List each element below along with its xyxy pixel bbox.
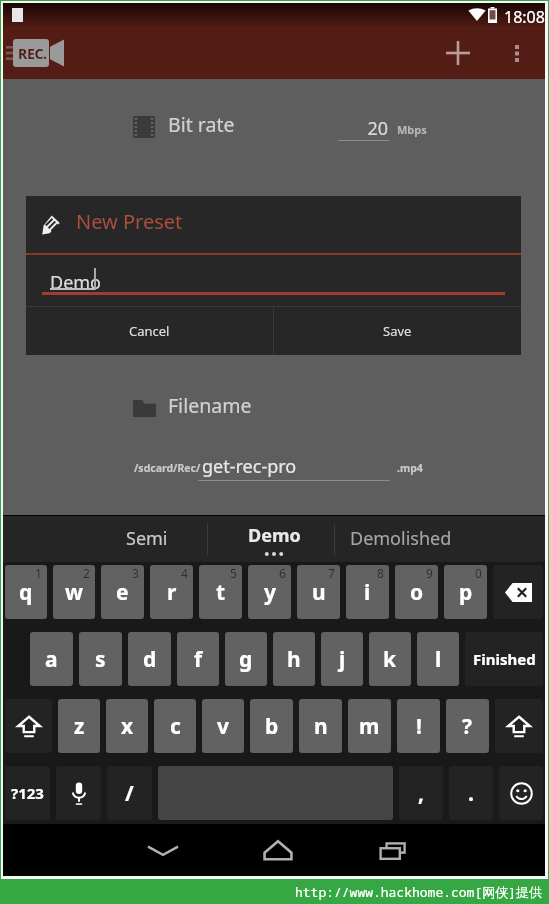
staticText: o (410, 578, 424, 607)
button[interactable]: w (53, 565, 95, 619)
staticText: http://www.hackhome.com[网侠]提供 (295, 883, 543, 901)
staticText: w (65, 578, 83, 607)
staticText: .mp4 (397, 461, 423, 475)
staticText: Demolished (350, 526, 452, 551)
staticText: 0 (475, 565, 482, 581)
staticText: . (468, 779, 474, 808)
staticText: f (194, 645, 203, 674)
button[interactable]: REC (13, 39, 64, 67)
staticText: 6 (279, 565, 286, 581)
button[interactable]: e (101, 565, 144, 619)
button[interactable]: ! (397, 699, 440, 753)
staticText: s (95, 645, 106, 674)
button[interactable]: l (417, 632, 459, 686)
button[interactable]: u (297, 565, 340, 619)
staticText: 8 (377, 565, 384, 581)
button[interactable]: t (199, 565, 242, 619)
staticText: Cancel (129, 322, 170, 340)
button[interactable]: ? (446, 699, 489, 753)
staticText: ? (462, 712, 473, 741)
button[interactable]: Recents (365, 824, 425, 876)
button[interactable]: More options (493, 29, 541, 77)
staticText: l (435, 645, 442, 674)
button[interactable]: k (369, 632, 411, 686)
button[interactable]: i (346, 565, 389, 619)
button[interactable]: Home (248, 824, 308, 876)
button[interactable]: p (444, 565, 487, 619)
button[interactable]: Semi (87, 516, 207, 562)
staticText: Semi (126, 526, 168, 551)
button[interactable]: Save (274, 307, 521, 355)
button[interactable]: j (321, 632, 363, 686)
staticText: Demo (248, 523, 301, 548)
button[interactable]: x (106, 699, 148, 753)
staticText: c (170, 712, 181, 741)
staticText: Mbps (397, 122, 427, 137)
staticText: Filename (168, 392, 252, 419)
button[interactable]: . (449, 766, 493, 820)
button[interactable]: Add preset (434, 29, 482, 77)
staticText: q (19, 578, 33, 607)
staticText: a (45, 645, 58, 674)
button[interactable]: a (30, 632, 73, 686)
staticText: Bit rate (168, 111, 235, 138)
button[interactable]: Finished (465, 632, 543, 686)
staticText: x (121, 712, 134, 741)
staticText: New Preset (76, 208, 183, 235)
staticText: 3 (132, 565, 139, 581)
button[interactable]: c (154, 699, 196, 753)
staticText: t (216, 578, 226, 607)
staticText: h (287, 645, 301, 674)
staticText: 2 (83, 565, 90, 581)
staticText: REC. (18, 44, 47, 63)
button[interactable]: f (177, 632, 219, 686)
button[interactable]: Shift (495, 699, 543, 753)
button[interactable]: ?123 (5, 766, 50, 820)
button[interactable]: z (58, 699, 100, 753)
button[interactable]: Demo (214, 516, 334, 562)
staticText: Save (383, 322, 412, 340)
button[interactable]: n (299, 699, 342, 753)
staticText: Finished (473, 649, 536, 669)
staticText: , (418, 779, 424, 808)
staticText: y (264, 578, 276, 607)
button[interactable]: Demolished (341, 516, 461, 562)
button[interactable]: b (250, 699, 293, 753)
staticText: m (359, 712, 380, 741)
staticText: Demo (50, 270, 102, 295)
staticText: /sdcard/Rec/ (134, 461, 201, 475)
staticText: 20 (338, 116, 388, 141)
button[interactable]: Back (133, 824, 193, 876)
button[interactable]: Shift (5, 699, 52, 753)
button[interactable]: Backspace (493, 565, 543, 619)
button[interactable]: s (79, 632, 122, 686)
button[interactable]: h (273, 632, 315, 686)
staticText: 1 (35, 565, 42, 581)
button[interactable]: d (128, 632, 171, 686)
staticText: b (265, 712, 279, 741)
button[interactable]: / (107, 766, 152, 820)
button[interactable]: g (225, 632, 267, 686)
staticText: g (239, 645, 253, 674)
staticText: k (383, 645, 397, 674)
button[interactable]: v (202, 699, 244, 753)
button[interactable]: Microphone (56, 766, 101, 820)
staticText: 4 (181, 565, 188, 581)
button[interactable]: , (399, 766, 443, 820)
button[interactable]: q (5, 565, 47, 619)
staticText: v (217, 712, 229, 741)
staticText: 5 (230, 565, 237, 581)
staticText: 7 (328, 565, 335, 581)
staticText: ?123 (11, 783, 44, 803)
button[interactable]: m (348, 699, 391, 753)
staticText: e (116, 578, 129, 607)
button[interactable]: o (395, 565, 438, 619)
button[interactable]: r (150, 565, 193, 619)
staticText: z (74, 712, 85, 741)
button[interactable]: y (248, 565, 291, 619)
staticText: u (312, 578, 326, 607)
button[interactable]: Emoji (499, 766, 543, 820)
button[interactable]: Cancel (26, 307, 273, 355)
staticText: ! (416, 712, 422, 741)
